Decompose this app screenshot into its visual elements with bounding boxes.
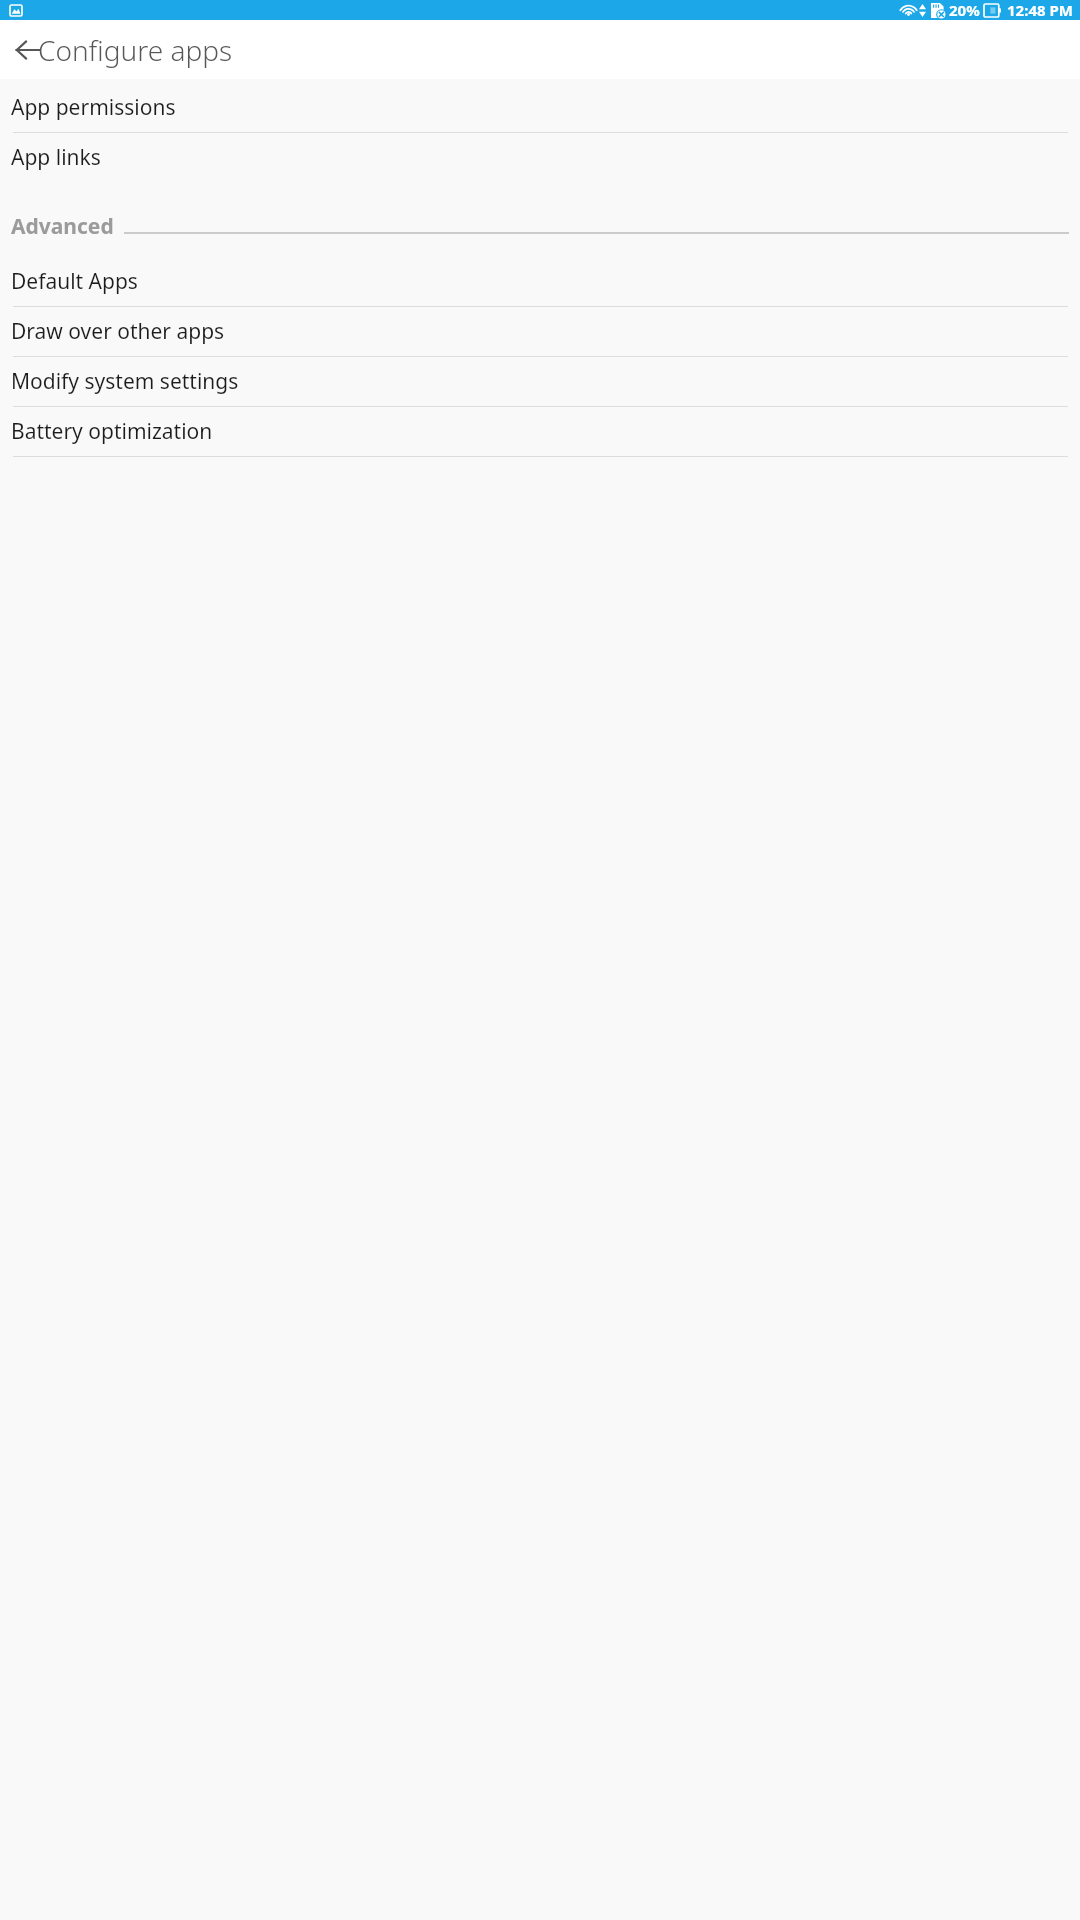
button[interactable]: App permissions — [0, 83, 1080, 132]
button[interactable]: Default Apps — [0, 257, 1080, 306]
button[interactable]: Battery optimization — [0, 407, 1080, 456]
staticText: Default Apps — [11, 267, 138, 296]
staticText: Draw over other apps — [11, 317, 225, 346]
button[interactable]: App links — [0, 133, 1080, 182]
staticText: Configure apps — [38, 31, 233, 69]
staticText: App links — [11, 143, 101, 172]
staticText: Battery optimization — [11, 417, 213, 446]
button[interactable]: Draw over other apps — [0, 307, 1080, 356]
staticText: Modify system settings — [11, 367, 239, 396]
staticText: 20% — [949, 0, 980, 20]
other: Screenshot — [10, 5, 22, 16]
staticText: 12:48 PM — [1007, 0, 1073, 20]
button[interactable]: Modify system settings — [0, 357, 1080, 406]
button[interactable]: Back — [5, 27, 51, 73]
staticText: Advanced — [11, 212, 114, 241]
staticText: App permissions — [11, 93, 176, 122]
